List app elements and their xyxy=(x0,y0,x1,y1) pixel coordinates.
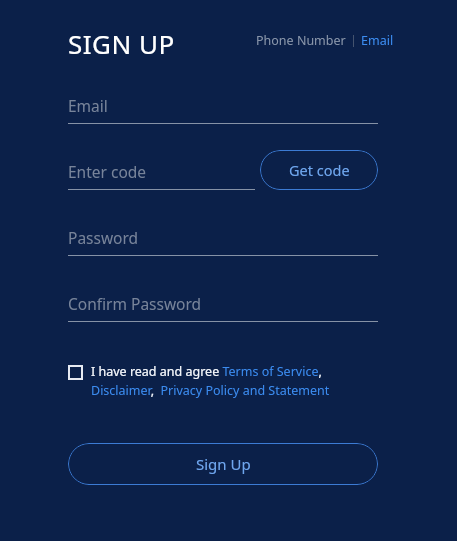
button[interactable]: Enter code xyxy=(68,161,255,190)
button[interactable]: I have read and agree Terms of Service, … xyxy=(91,363,378,399)
button[interactable]: Sign Up xyxy=(68,443,378,485)
button[interactable]: Confirm Password xyxy=(68,293,378,322)
button[interactable]: Email xyxy=(68,95,378,124)
staticText: Email xyxy=(361,32,394,49)
button[interactable]: Password xyxy=(68,227,378,256)
staticText: Phone Number xyxy=(256,32,346,49)
button[interactable]: Get code xyxy=(260,150,378,190)
staticText: Enter code xyxy=(68,161,147,182)
staticText: Email xyxy=(68,95,108,116)
button[interactable]: Agree to terms checkbox xyxy=(68,365,83,380)
staticText: Sign Up xyxy=(196,454,251,474)
staticText: Password xyxy=(68,227,139,248)
staticText: Confirm Password xyxy=(68,293,202,314)
staticText: I have read and agree Terms of Service, … xyxy=(91,363,378,399)
button[interactable]: Email xyxy=(361,32,394,49)
button[interactable]: Phone Number xyxy=(256,32,346,49)
staticText: SIGN UP xyxy=(68,26,175,61)
staticText: Get code xyxy=(289,160,350,180)
